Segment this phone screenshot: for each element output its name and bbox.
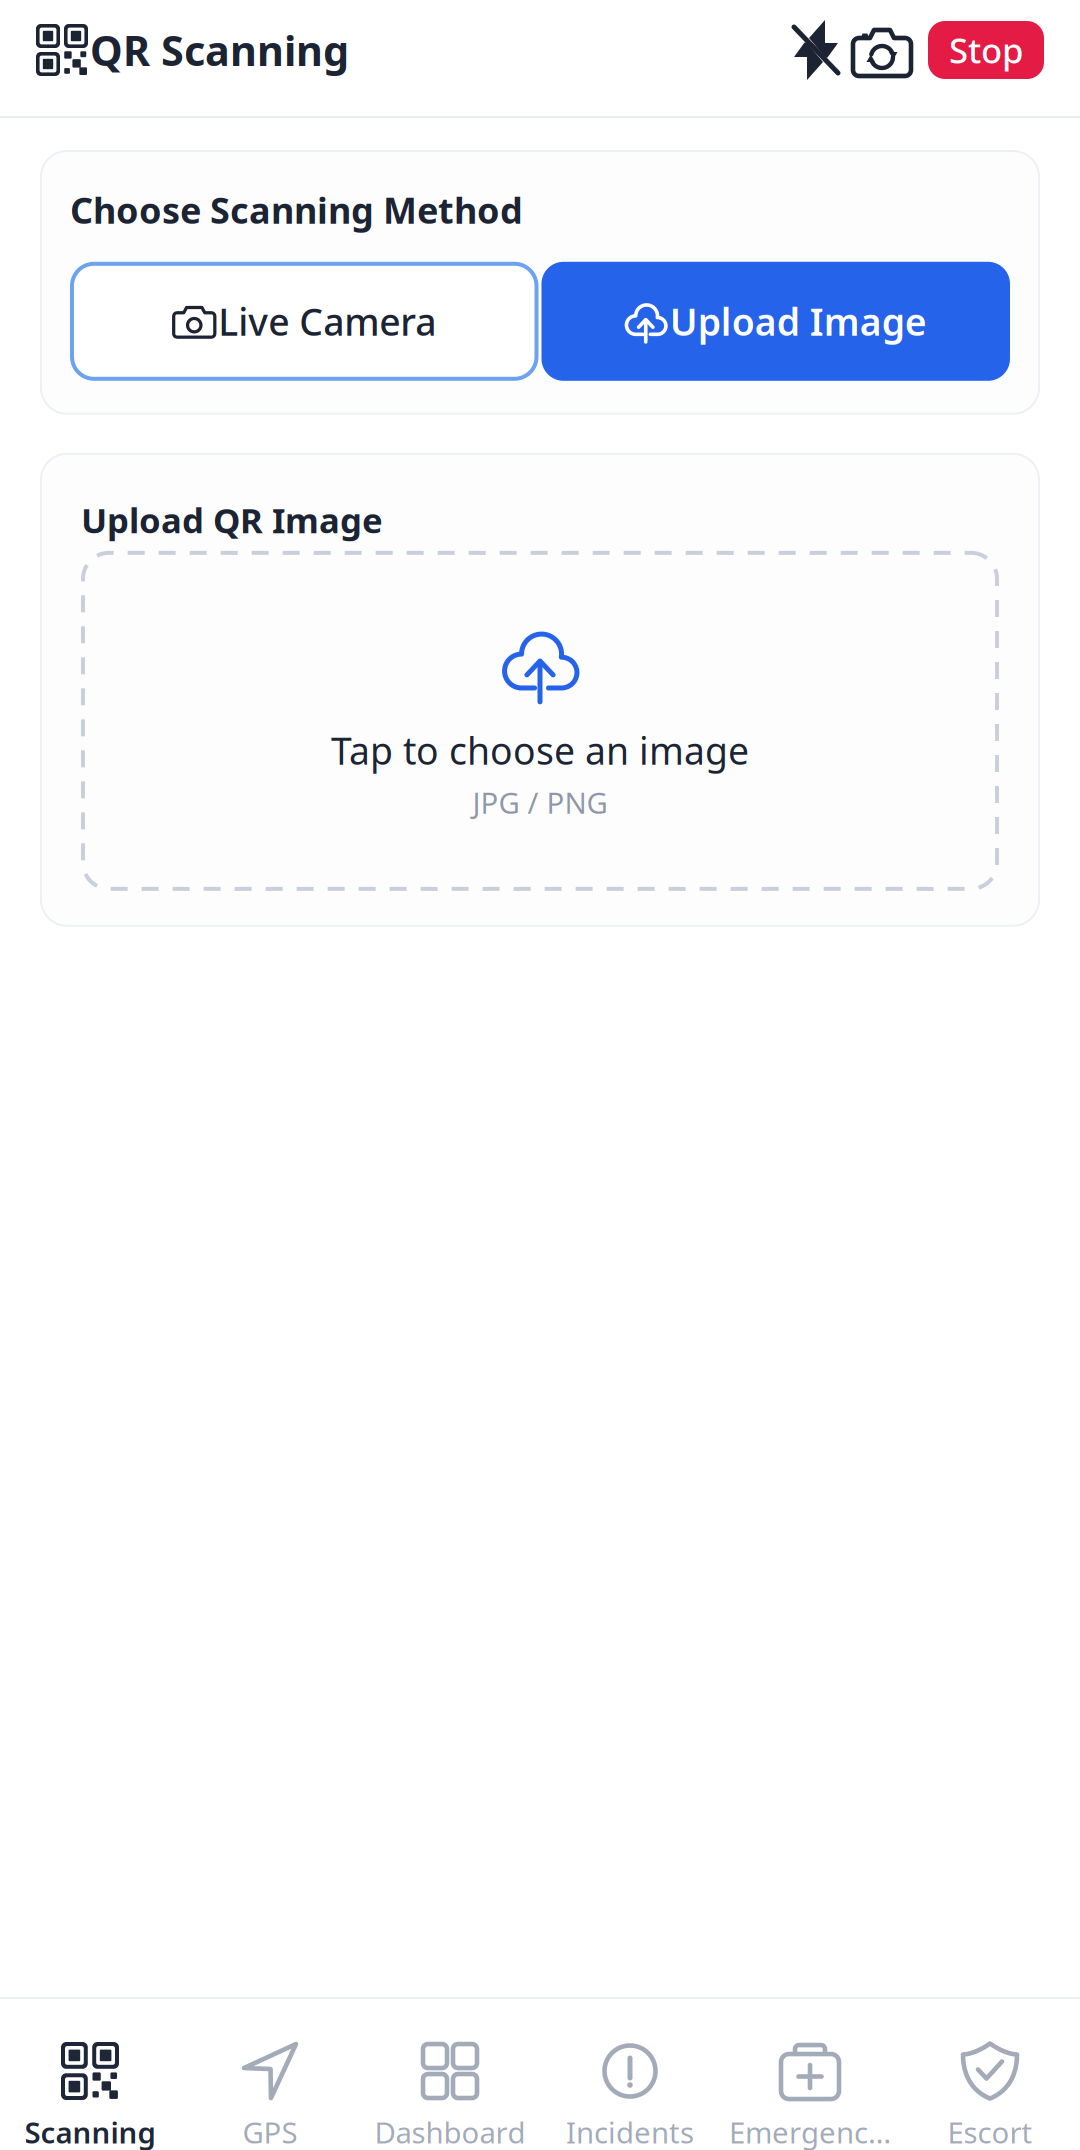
staticText: Upload Image <box>670 296 927 346</box>
button[interactable]: Switch camera <box>848 22 914 78</box>
staticText: Emergenc… <box>729 2112 891 2150</box>
staticText: Upload QR Image <box>81 497 383 543</box>
staticText: GPS <box>242 2112 297 2150</box>
staticText: Choose Scanning Method <box>70 186 523 234</box>
button[interactable]: GPS <box>180 1999 360 2150</box>
button[interactable]: Scanning <box>0 1999 180 2150</box>
button[interactable]: Stop <box>914 21 1044 79</box>
button[interactable]: Upload Image <box>541 262 1010 381</box>
staticText: Incidents <box>566 2112 694 2150</box>
staticText: Scanning <box>24 2112 155 2150</box>
staticText: QR Scanning <box>90 23 349 77</box>
staticText: Tap to choose an image <box>331 725 749 775</box>
button[interactable]: Incidents <box>540 1999 720 2150</box>
staticText: Dashboard <box>374 2112 525 2150</box>
button[interactable]: Escort <box>900 1999 1080 2150</box>
button[interactable]: Tap to choose an image <box>83 553 997 889</box>
staticText: Stop <box>949 27 1023 73</box>
button[interactable]: Live Camera <box>70 262 538 381</box>
staticText: Escort <box>947 2112 1032 2150</box>
button[interactable]: Dashboard <box>360 1999 540 2150</box>
button[interactable]: Emergenc… <box>720 1999 900 2150</box>
staticText: JPG / PNG <box>472 783 607 822</box>
staticText: Live Camera <box>218 296 436 346</box>
button[interactable]: Flash off <box>784 18 848 82</box>
